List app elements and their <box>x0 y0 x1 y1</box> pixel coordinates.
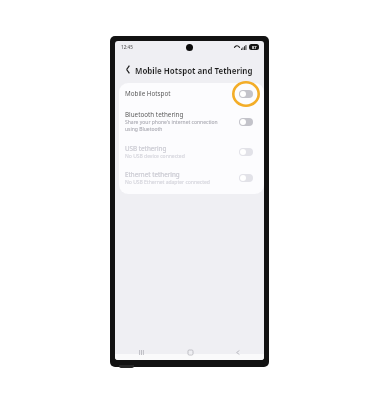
button[interactable]: Home <box>183 345 197 359</box>
button[interactable]: Toggle <box>239 174 253 182</box>
staticText: Share your phone's internet connection u… <box>125 119 218 133</box>
button[interactable]: Toggle <box>239 90 253 98</box>
button[interactable]: Toggle <box>239 148 253 156</box>
button[interactable]: Ethernet tethering <box>119 165 264 191</box>
staticText: Ethernet tethering <box>125 170 180 179</box>
staticText: No USB Ethernet adapter connected <box>125 179 210 186</box>
staticText: Mobile Hotspot <box>125 89 171 98</box>
staticText: 12:45 <box>121 44 133 50</box>
staticText: USB tethering <box>125 144 167 153</box>
button[interactable]: Toggle <box>239 118 253 126</box>
staticText: No USB device connected <box>125 153 185 160</box>
button[interactable]: Back <box>231 345 245 359</box>
button[interactable]: Mobile Hotspot <box>119 83 264 104</box>
button[interactable]: Bluetooth tethering <box>119 104 264 139</box>
button[interactable]: Recents <box>134 345 148 359</box>
staticText: Mobile Hotspot and Tethering <box>135 66 253 77</box>
staticText: 87 <box>252 45 257 50</box>
button[interactable]: Back <box>121 65 134 78</box>
staticText: Bluetooth tethering <box>125 110 184 119</box>
button[interactable]: USB tethering <box>119 139 264 165</box>
